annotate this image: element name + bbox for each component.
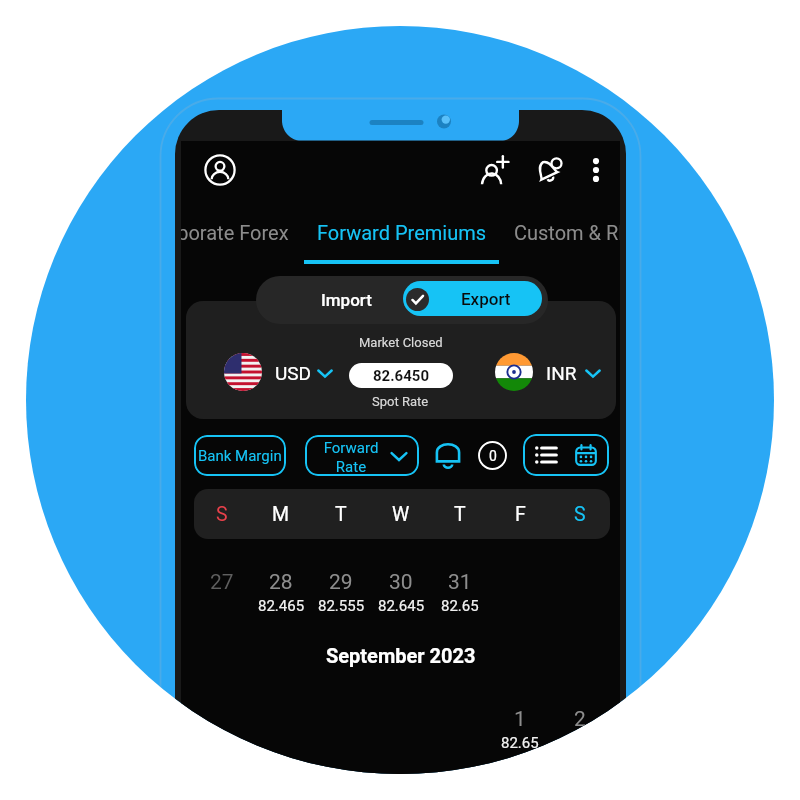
staticText: 27 [210,570,234,595]
button[interactable]: Currency flag [495,353,533,391]
staticText: 82.645 [378,597,425,615]
staticText: 82.555 [318,597,365,615]
button[interactable]: Add person [474,149,516,191]
button[interactable]: Notifications [527,148,569,190]
staticText: 0 [489,448,497,464]
button[interactable]: Account [199,149,241,191]
staticText: 82.65 [501,734,539,752]
button[interactable]: Export [403,281,542,316]
button[interactable]: M [251,489,311,539]
staticText: 2 [574,707,586,732]
staticText: 28 [269,570,293,595]
staticText: S [216,503,228,526]
staticText: S [574,503,586,526]
button[interactable]: Currency flag [224,353,262,391]
staticText: Export [461,289,511,309]
button[interactable]: 2 [550,707,610,732]
button[interactable]: Rate alerts [432,437,464,469]
button[interactable]: Bank Margin [194,435,286,476]
staticText: T [335,503,347,526]
staticText: 31 [448,570,472,595]
staticText: 82.65 [441,597,479,615]
button[interactable]: Custom & RBI [514,221,620,244]
button[interactable]: Change quote currency [583,363,603,383]
staticText: Spot Rate [372,394,429,409]
staticText: Forward Rate [315,439,387,476]
staticText: INR [546,362,577,384]
button[interactable]: Alert count [478,441,507,470]
button[interactable]: W [371,489,431,539]
button[interactable]: Forward Premiums [317,221,487,244]
staticText: Bank Margin [198,447,282,465]
button[interactable]: 82.6450 [349,363,453,388]
button[interactable]: 28 [251,570,311,595]
button[interactable]: S [550,489,610,539]
button[interactable]: Import [256,276,403,324]
button[interactable]: Change base currency [315,363,335,383]
staticText: F [515,503,526,526]
button[interactable]: Forward Rate [305,435,419,476]
button[interactable]: 31 [430,570,490,595]
button[interactable]: T [311,489,371,539]
staticText: USD [275,362,312,384]
button[interactable]: List view [528,437,564,473]
staticText: Market Closed [359,335,443,350]
button[interactable]: Calendar view [568,437,604,473]
button[interactable]: 30 [371,570,431,595]
staticText: 1 [514,707,526,732]
staticText: M [272,503,290,526]
button[interactable]: T [430,489,490,539]
staticText: 82.465 [258,597,305,615]
button[interactable]: More options [578,152,614,188]
button[interactable]: F [490,489,550,539]
button[interactable]: 27 [192,570,252,595]
staticText: Import [321,290,372,310]
staticText: W [392,503,410,526]
button[interactable]: S [192,489,252,539]
staticText: 82.6450 [373,367,430,385]
staticText: 30 [389,570,413,595]
staticText: 29 [329,570,353,595]
staticText: September 2023 [326,644,476,667]
button[interactable]: 1 [490,707,550,732]
button[interactable]: 29 [311,570,371,595]
staticText: T [454,503,466,526]
button[interactable]: Corporate Forex [181,221,289,244]
